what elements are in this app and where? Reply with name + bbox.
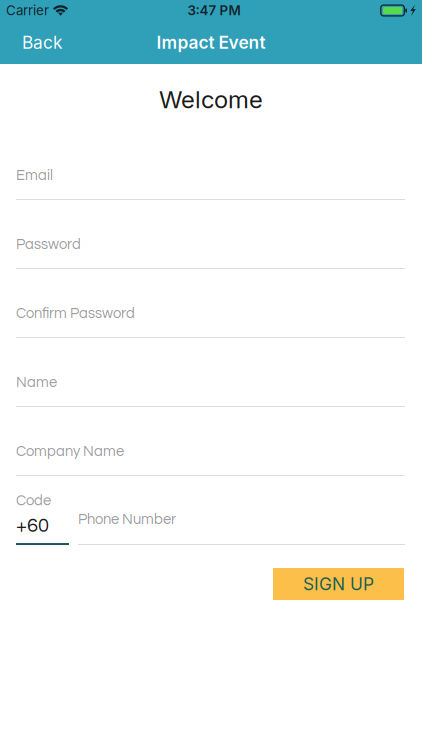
staticText: Back [22,32,63,53]
staticText: Carrier [6,2,49,18]
staticText: Confirm Password [16,306,135,321]
button[interactable]: Back [0,21,75,64]
staticText: Welcome [159,85,263,114]
staticText: SIGN UP [303,574,374,595]
staticText: Impact Event [156,32,265,53]
staticText: Phone Number [78,512,176,527]
staticText: 3:47 PM [187,2,240,18]
staticText: Email [16,168,53,183]
staticText: Code [16,493,51,508]
staticText: Password [16,237,81,252]
staticText: +60 [16,515,49,536]
button[interactable]: SIGN UP [273,568,404,600]
staticText: Company Name [16,444,124,459]
staticText: Name [16,375,57,390]
